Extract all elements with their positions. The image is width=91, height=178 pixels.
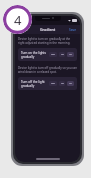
staticText: Save <box>69 28 77 32</box>
staticText: Cancel <box>18 28 28 32</box>
button[interactable]: Set <box>67 52 74 57</box>
staticText: 4 <box>14 11 22 29</box>
staticText: Gradient <box>40 27 56 32</box>
button[interactable]: On <box>49 52 57 57</box>
button[interactable]: Off <box>59 52 65 57</box>
button[interactable]: On <box>49 81 57 86</box>
staticText: Turn off the light gradually <box>21 80 49 88</box>
staticText: Device light to turn off gradually so yo… <box>18 66 77 74</box>
button[interactable]: Turn on the lights gradually <box>18 48 77 61</box>
button[interactable]: Save <box>66 27 80 33</box>
button[interactable]: Off <box>59 81 65 86</box>
button[interactable]: Set <box>67 81 74 86</box>
button[interactable]: Cancel <box>15 27 31 33</box>
staticText: Turn on the lights gradually <box>21 51 49 59</box>
other: Step 4 <box>3 5 32 34</box>
staticText: Device light to turn on gradually at the… <box>18 37 77 45</box>
button[interactable]: Turn off the light gradually <box>18 77 77 90</box>
